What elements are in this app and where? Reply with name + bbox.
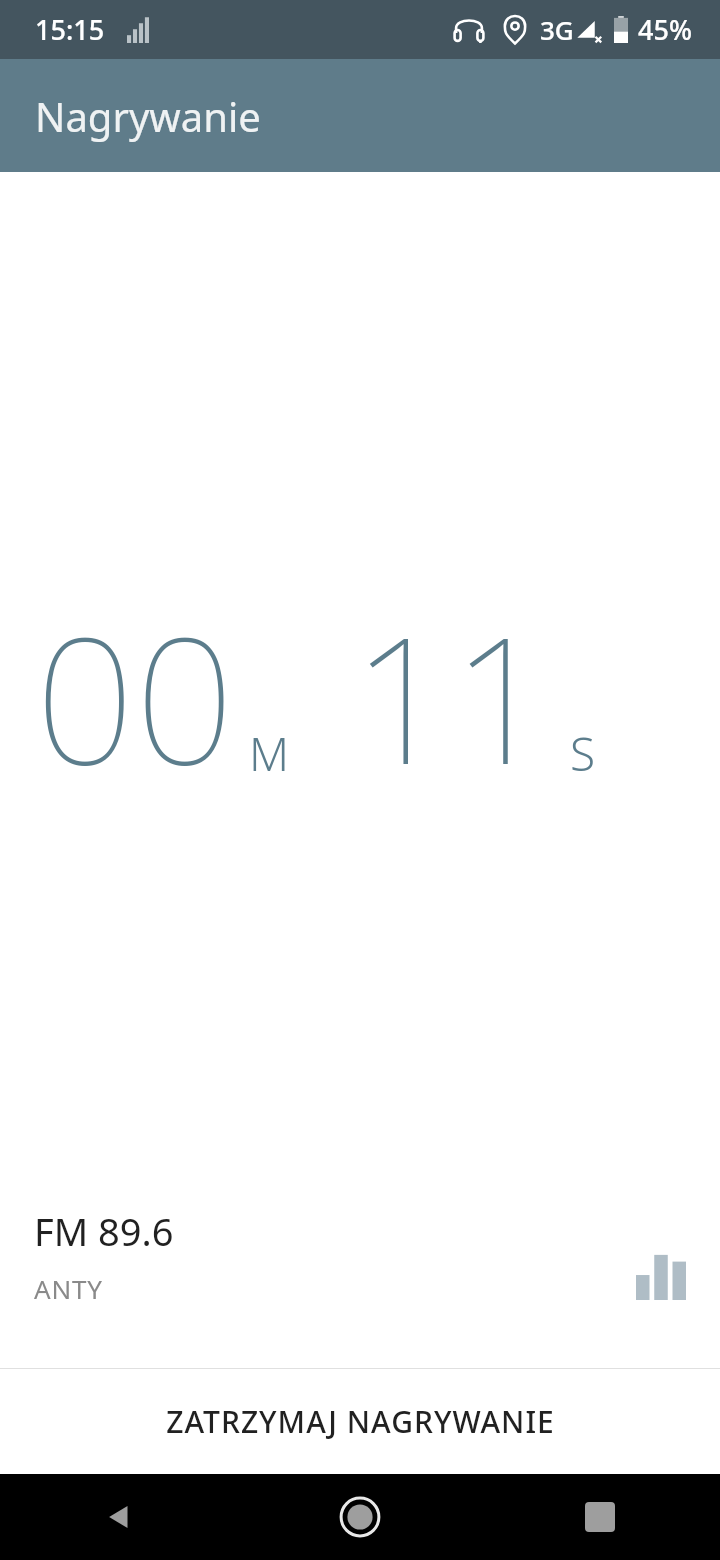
staticText: 11 [352,577,552,815]
button[interactable]: Recent apps [480,1474,720,1560]
button[interactable]: Back [0,1474,240,1560]
staticText: M [249,722,290,785]
staticText: 15:15 [35,11,105,48]
staticText: FM 89.6 [34,1205,174,1257]
staticText: 00 [35,577,235,815]
staticText: 3G [540,12,574,47]
staticText: Nagrywanie [35,89,261,143]
staticText: ZATRZYMAJ NAGRYWANIE [166,1401,555,1442]
staticText: ANTY [34,1271,103,1306]
staticText: S [570,722,596,785]
button[interactable]: Home [240,1474,480,1560]
button[interactable]: ZATRZYMAJ NAGRYWANIE [0,1369,720,1474]
staticText: 45% [638,11,692,48]
other: Signal strength [636,1252,686,1300]
